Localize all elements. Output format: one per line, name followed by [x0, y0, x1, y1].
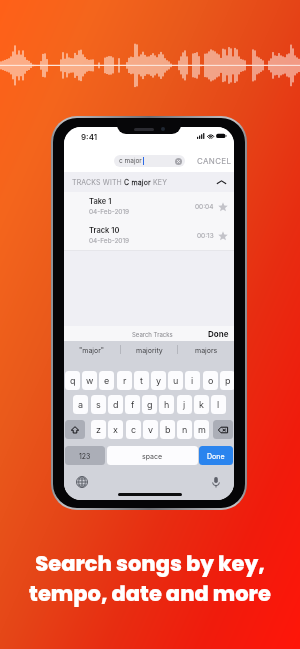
staticText: 00:13	[197, 232, 214, 240]
staticText: Done	[207, 452, 225, 460]
staticText: k	[199, 399, 204, 410]
staticText: w	[86, 375, 94, 386]
staticText: m	[198, 424, 206, 435]
button[interactable]: f	[125, 395, 140, 414]
staticText: 04-Feb-2019	[89, 237, 130, 245]
button[interactable]: majority	[121, 341, 177, 358]
button[interactable]: g	[142, 395, 157, 414]
staticText: n	[182, 424, 188, 435]
staticText: 123	[79, 452, 91, 460]
button[interactable]: Backspace	[213, 420, 233, 439]
staticText: 04-Feb-2019	[89, 208, 130, 216]
button[interactable]: n	[177, 420, 192, 439]
staticText: TRACKS WITH C major KEY	[72, 178, 168, 186]
other: Collapse section	[216, 177, 227, 188]
staticText: Track 10	[89, 226, 120, 235]
button[interactable]: c major	[119, 155, 182, 167]
other: Favourite	[218, 202, 228, 212]
staticText: c	[131, 424, 137, 435]
staticText: majors	[195, 346, 218, 354]
button[interactable]: b	[160, 420, 175, 439]
button[interactable]: j	[177, 395, 192, 414]
staticText: j	[183, 399, 186, 410]
button[interactable]: Change keyboard	[76, 476, 88, 488]
staticText: u	[173, 375, 179, 386]
button[interactable]: v	[143, 420, 158, 439]
button[interactable]: "major"	[64, 341, 120, 358]
button[interactable]: i	[185, 371, 200, 390]
button[interactable]: r	[117, 371, 132, 390]
button[interactable]: TRACKS WITH C major KEY	[72, 172, 227, 192]
staticText: v	[148, 424, 154, 435]
staticText: majority	[136, 346, 163, 354]
staticText: d	[113, 399, 119, 410]
staticText: "major"	[79, 346, 105, 354]
button[interactable]: a	[73, 395, 88, 414]
button[interactable]: e	[99, 371, 114, 390]
button[interactable]: w	[82, 371, 97, 390]
button[interactable]: x	[108, 420, 123, 439]
staticText: g	[147, 399, 153, 410]
staticText: q	[70, 375, 76, 386]
button[interactable]: o	[203, 371, 218, 390]
button[interactable]: CANCEL	[197, 153, 232, 168]
staticText: f	[131, 399, 135, 410]
button[interactable]: z	[91, 420, 106, 439]
staticText: CANCEL	[197, 156, 232, 166]
other: Favourite	[218, 231, 228, 241]
button[interactable]: u	[168, 371, 183, 390]
staticText: Done	[208, 329, 229, 339]
staticText: l	[217, 399, 220, 410]
button[interactable]: k	[194, 395, 209, 414]
button[interactable]: t	[134, 371, 149, 390]
button[interactable]: q	[65, 371, 80, 390]
staticText: o	[208, 375, 214, 386]
button[interactable]: p	[220, 371, 234, 390]
button[interactable]: l	[211, 395, 226, 414]
button[interactable]: majors	[178, 341, 234, 358]
staticText: i	[191, 375, 194, 386]
staticText: 9:41	[81, 132, 98, 142]
staticText: y	[156, 375, 162, 386]
button[interactable]: Done	[208, 329, 229, 339]
staticText: Search songs by key, tempo, date and mor…	[29, 549, 271, 608]
button[interactable]: Dictate	[210, 476, 222, 488]
button[interactable]: d	[108, 395, 123, 414]
staticText: e	[104, 375, 110, 386]
button[interactable]: s	[91, 395, 106, 414]
staticText: 00:04	[195, 203, 214, 211]
button[interactable]: Done	[199, 446, 233, 465]
other: Clear text	[175, 158, 182, 165]
staticText: r	[123, 375, 127, 386]
staticText: space	[142, 452, 163, 460]
staticText: Take 1	[89, 197, 112, 206]
staticText: Search Tracks	[132, 331, 173, 338]
button[interactable]: Take 1	[89, 192, 228, 221]
staticText: s	[96, 399, 101, 410]
button[interactable]: space	[107, 446, 198, 465]
button[interactable]: h	[159, 395, 174, 414]
staticText: z	[96, 424, 101, 435]
staticText: t	[140, 375, 143, 386]
staticText: h	[164, 399, 170, 410]
button[interactable]: 123	[65, 446, 105, 465]
button[interactable]: y	[151, 371, 166, 390]
staticText: a	[78, 399, 84, 410]
staticText: p	[225, 375, 231, 386]
staticText: c major	[119, 157, 142, 165]
staticText: b	[165, 424, 171, 435]
button[interactable]: m	[194, 420, 209, 439]
button[interactable]: Track 10	[89, 221, 228, 250]
button[interactable]: c	[126, 420, 141, 439]
staticText: x	[113, 424, 118, 435]
button[interactable]: Shift	[65, 420, 85, 439]
